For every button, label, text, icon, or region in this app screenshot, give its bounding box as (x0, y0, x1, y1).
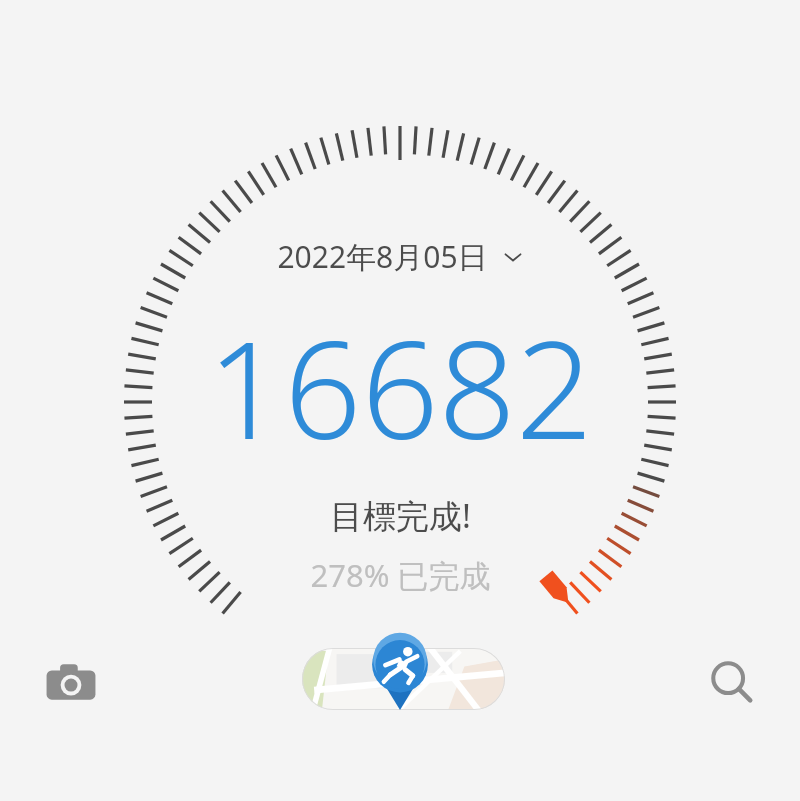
button[interactable]: Running activity (369, 634, 431, 710)
button[interactable]: Map route (302, 648, 505, 710)
staticText: 2022年8月05日 (277, 236, 488, 277)
staticText: 278% 已完成 (310, 554, 491, 596)
staticText: 16682 (207, 295, 593, 479)
button[interactable]: Search (697, 648, 767, 718)
button[interactable]: Camera (36, 648, 106, 718)
button[interactable]: 2022年8月05日 (277, 236, 524, 277)
staticText: 目標完成! (330, 493, 471, 538)
